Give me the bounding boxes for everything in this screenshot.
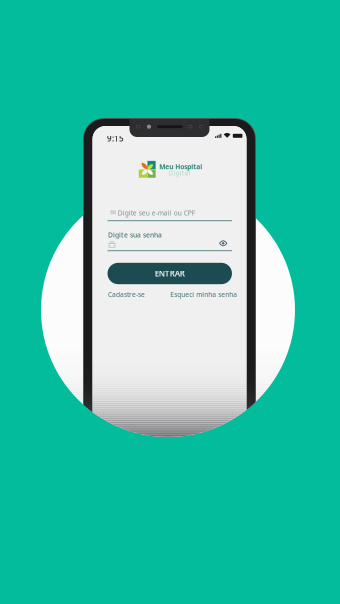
staticText: Cadastre-se — [108, 290, 145, 299]
staticText: Meu Hospital — [159, 162, 202, 171]
button[interactable]: Cadastre-se — [108, 290, 145, 299]
button[interactable]: Esqueci minha senha — [170, 290, 237, 299]
staticText: Digital — [168, 169, 190, 177]
staticText: Digite seu e-mail ou CPF — [118, 209, 195, 217]
staticText: 9:15 — [107, 133, 124, 144]
button[interactable]: ENTRAR — [107, 263, 232, 284]
staticText: ENTRAR — [155, 268, 185, 279]
staticText: Esqueci minha senha — [170, 290, 237, 299]
staticText: Digite sua senha — [108, 230, 162, 239]
